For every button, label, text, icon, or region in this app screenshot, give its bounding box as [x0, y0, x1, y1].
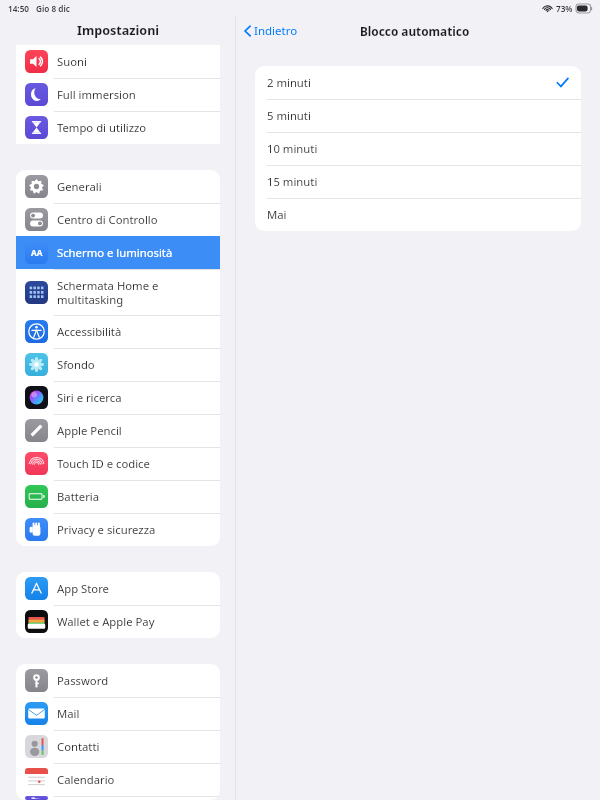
button[interactable]: Contatti — [16, 730, 220, 763]
staticText: Indietro — [254, 23, 298, 39]
staticText: Wallet e Apple Pay — [57, 614, 155, 629]
staticText: Note — [57, 796, 83, 800]
button[interactable]: App Store — [16, 572, 220, 605]
staticText: Siri e ricerca — [57, 390, 122, 405]
staticText: Schermata Home e multitasking — [57, 278, 159, 307]
button[interactable]: 2 minuti — [255, 66, 581, 99]
button[interactable]: Mai — [255, 198, 581, 231]
staticText: Gio 8 dic — [36, 3, 70, 14]
button[interactable]: Schermata Home e multitasking — [16, 269, 220, 315]
staticText: Suoni — [57, 54, 87, 69]
staticText: 15 minuti — [267, 174, 318, 189]
staticText: 73% — [556, 3, 573, 14]
button[interactable]: Mail — [16, 697, 220, 730]
button[interactable]: Indietro — [244, 23, 298, 39]
staticText: 5 minuti — [267, 108, 311, 123]
staticText: Mai — [267, 207, 287, 222]
button[interactable]: Touch ID e codice — [16, 447, 220, 480]
button[interactable]: Tempo di utilizzo — [16, 111, 220, 144]
staticText: Sfondo — [57, 357, 95, 372]
button[interactable]: 15 minuti — [255, 165, 581, 198]
button[interactable]: Accessibilità — [16, 315, 220, 348]
staticText: Batteria — [57, 489, 100, 504]
staticText: 14:50 — [8, 3, 29, 14]
button[interactable]: Note — [16, 796, 220, 800]
staticText: Touch ID e codice — [57, 456, 150, 471]
staticText: Blocco automatico — [360, 23, 470, 39]
staticText: Contatti — [57, 739, 100, 754]
staticText: 10 minuti — [267, 141, 318, 156]
button[interactable]: Privacy e sicurezza — [16, 513, 220, 546]
staticText: Generali — [57, 179, 102, 194]
other: Indietro — [244, 25, 251, 37]
button[interactable]: Calendario — [16, 763, 220, 796]
button[interactable]: Sfondo — [16, 348, 220, 381]
button[interactable]: 10 minuti — [255, 132, 581, 165]
button[interactable]: Siri e ricerca — [16, 381, 220, 414]
staticText: Privacy e sicurezza — [57, 522, 156, 537]
button[interactable]: Wallet e Apple Pay — [16, 605, 220, 638]
staticText: Apple Pencil — [57, 423, 122, 438]
button[interactable]: Password — [16, 664, 220, 697]
button[interactable]: Full immersion — [16, 78, 220, 111]
button[interactable]: Centro di Controllo — [16, 203, 220, 236]
staticText: AA — [31, 247, 43, 258]
button[interactable]: 5 minuti — [255, 99, 581, 132]
staticText: 2 minuti — [267, 75, 311, 90]
staticText: Tempo di utilizzo — [57, 120, 147, 135]
button[interactable]: Apple Pencil — [16, 414, 220, 447]
staticText: Calendario — [57, 772, 115, 787]
staticText: Mail — [57, 706, 80, 721]
button[interactable]: Batteria — [16, 480, 220, 513]
staticText: Accessibilità — [57, 324, 122, 339]
staticText: Centro di Controllo — [57, 212, 158, 227]
button[interactable]: Generali — [16, 170, 220, 203]
staticText: Password — [57, 673, 109, 688]
button[interactable]: Suoni — [16, 45, 220, 78]
button[interactable]: AA — [16, 236, 220, 269]
staticText: App Store — [57, 581, 109, 596]
staticText: Full immersion — [57, 87, 136, 102]
staticText: Impostazioni — [77, 22, 160, 39]
staticText: Schermo e luminosità — [57, 245, 173, 260]
